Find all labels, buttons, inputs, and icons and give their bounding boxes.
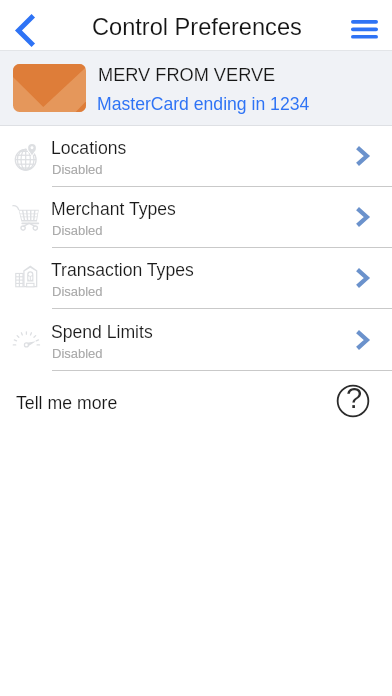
button[interactable]: Merchant Types	[0, 187, 392, 248]
button[interactable]: Locations	[0, 126, 392, 187]
staticText: MasterCard ending in 1234	[97, 94, 310, 114]
button[interactable]: Menu	[336, 0, 392, 51]
staticText: Transaction Types	[51, 260, 194, 280]
button[interactable]: Spend Limits	[0, 310, 392, 371]
staticText: Disabled	[52, 162, 103, 177]
button[interactable]: MERV FROM VERVE	[0, 51, 392, 126]
staticText: Disabled	[52, 346, 103, 361]
staticText: MERV FROM VERVE	[98, 65, 276, 85]
staticText: Locations	[51, 138, 127, 158]
staticText: Spend Limits	[51, 322, 153, 342]
button[interactable]: Transaction Types	[0, 248, 392, 309]
staticText: Disabled	[52, 223, 103, 238]
button[interactable]: Back	[0, 0, 52, 51]
staticText: ?	[346, 382, 363, 414]
staticText: Control Preferences	[92, 14, 302, 40]
button[interactable]: Help	[336, 384, 370, 418]
staticText: Disabled	[52, 284, 103, 299]
staticText: Merchant Types	[51, 199, 176, 219]
button[interactable]: Tell me more	[16, 393, 118, 413]
